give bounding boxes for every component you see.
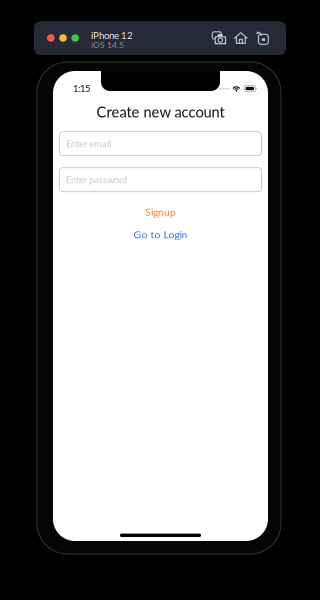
staticText: iOS 14.5 <box>91 40 124 50</box>
staticText: Create new account <box>96 103 224 121</box>
staticText: Signup <box>145 206 176 218</box>
staticText: Enter email <box>66 138 111 149</box>
staticText: Enter password <box>66 174 127 185</box>
button[interactable]: Go to Login <box>133 228 187 241</box>
staticText: 1:15 <box>73 83 90 94</box>
button[interactable]: Rotate device <box>256 32 269 44</box>
button[interactable]: Home <box>234 32 247 44</box>
staticText: Go to Login <box>133 228 187 241</box>
button[interactable]: Signup <box>145 206 176 218</box>
staticText: iPhone 12 <box>91 29 133 41</box>
button[interactable]: Screenshot <box>212 32 227 44</box>
